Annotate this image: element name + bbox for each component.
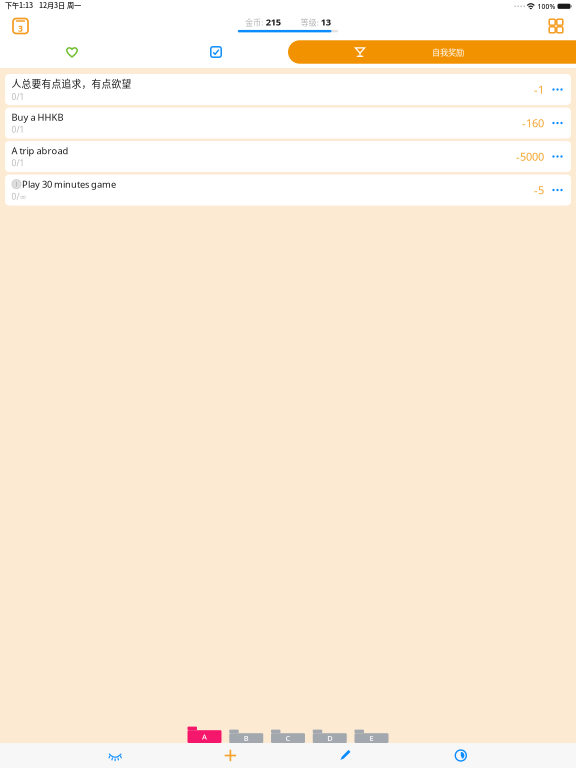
- staticText: A trip abroad: [11, 144, 68, 157]
- button[interactable]: Statistics: [403, 743, 518, 768]
- staticText: D: [327, 733, 332, 743]
- button[interactable]: D: [313, 727, 347, 743]
- button[interactable]: Hide completed: [58, 743, 173, 768]
- staticText: -160: [522, 116, 544, 130]
- staticText: E: [369, 733, 373, 743]
- staticText: 0/1: [11, 91, 24, 102]
- button[interactable]: A trip abroad: [5, 141, 571, 172]
- staticText: 13: [321, 16, 331, 28]
- staticText: Buy a HHKB: [11, 111, 63, 123]
- staticText: 人总要有点追求，有点欲望: [11, 77, 131, 91]
- button[interactable]: 自我奖励: [288, 38, 576, 66]
- staticText: -5: [534, 183, 544, 197]
- staticText: B: [244, 733, 249, 743]
- button[interactable]: E: [354, 727, 388, 743]
- staticText: -5000: [516, 149, 544, 164]
- staticText: 下午1:13 12月3日 周一: [5, 0, 81, 10]
- staticText: 100%: [537, 2, 555, 11]
- button[interactable]: Add goal: [173, 743, 288, 768]
- button[interactable]: C: [271, 727, 305, 743]
- staticText: 0/∞: [11, 191, 26, 202]
- staticText: 0/1: [11, 157, 24, 169]
- staticText: Play 30 minutes game: [22, 178, 116, 190]
- staticText: 金币:: [245, 16, 263, 28]
- button[interactable]: Favorites: [0, 38, 144, 66]
- staticText: -1: [534, 82, 544, 97]
- button[interactable]: 人总要有点追求，有点欲望: [5, 74, 571, 105]
- button[interactable]: Calendar: [7, 14, 33, 38]
- staticText: 0/1: [11, 124, 24, 135]
- staticText: A: [202, 731, 207, 742]
- button[interactable]: Grid view: [543, 14, 569, 38]
- staticText: 215: [266, 16, 281, 28]
- button[interactable]: Completed: [144, 38, 288, 66]
- staticText: 等级:: [301, 16, 319, 28]
- button[interactable]: Buy a HHKB: [5, 107, 571, 138]
- button[interactable]: Edit: [288, 743, 403, 768]
- button[interactable]: A: [187, 727, 221, 743]
- staticText: 自我奖励: [432, 46, 464, 58]
- button[interactable]: Play 30 minutes game: [5, 174, 571, 205]
- button[interactable]: B: [229, 727, 263, 743]
- staticText: C: [285, 733, 290, 743]
- staticText: 3: [18, 22, 23, 34]
